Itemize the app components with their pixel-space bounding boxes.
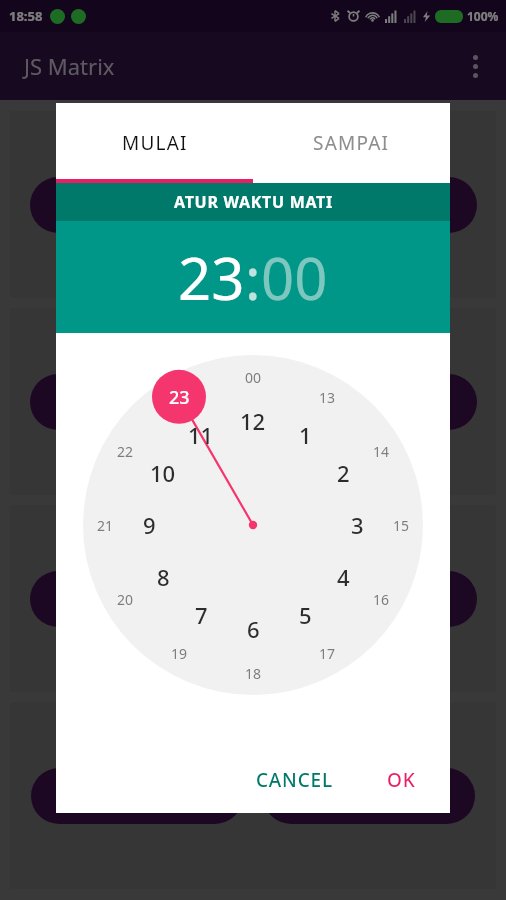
staticText: 8 [157,562,170,592]
button[interactable]: 5 [287,600,323,630]
staticText: : [245,238,261,317]
button[interactable]: Auto On/Off [10,702,496,889]
button[interactable]: More options [452,43,498,89]
staticText: 12 [240,406,266,436]
staticText: 9 [143,510,156,540]
staticText: 15 [393,516,410,535]
button[interactable]: 12 [235,406,271,436]
staticText: MULAI [122,130,188,156]
staticText: 100% [467,8,499,24]
staticText: JS Matrix [24,51,115,81]
button[interactable]: 21 [87,510,123,540]
button[interactable]: 6 [235,614,271,644]
staticText: 4 [337,562,350,592]
staticText: 18 [245,664,262,683]
staticText: 11 [188,420,214,450]
staticText: 23 [169,385,190,410]
button[interactable]: 17 [309,638,345,668]
button[interactable]: 13 [309,382,345,412]
staticText: 7 [195,600,208,630]
button[interactable]: 1 [287,420,323,450]
button[interactable]: 2 [325,458,361,488]
button[interactable]: 14 [363,436,399,466]
button[interactable]: CANCEL [242,757,347,803]
staticText: 14 [373,442,390,461]
button[interactable] [30,374,477,430]
button[interactable]: 23 [178,238,245,317]
button[interactable] [10,505,496,692]
staticText: SAMPAI [313,130,390,156]
button[interactable] [30,571,477,627]
button[interactable]: 9 [131,510,167,540]
staticText: 6 [247,614,260,644]
button[interactable]: 7 [183,600,219,630]
staticText: 3 [351,510,364,540]
staticText: Atur Waktu [338,785,428,808]
button[interactable]: 19 [161,638,197,668]
staticText: 13 [319,388,336,407]
button[interactable]: OK [373,757,430,803]
staticText: 22 [117,442,134,461]
button[interactable] [10,308,496,495]
button[interactable]: 4 [325,562,361,592]
button[interactable]: Auto On/Off [31,768,243,824]
staticText: 5 [299,600,312,630]
staticText: ATUR WAKTU MATI [174,191,333,213]
button[interactable]: 22 [107,436,143,466]
staticText: 16 [373,590,390,609]
button[interactable]: 10 [145,458,181,488]
staticText: 1 [299,420,312,450]
staticText: OK [387,767,416,793]
button[interactable]: SAMPAI [253,103,450,183]
button[interactable]: 20 [107,584,143,614]
button[interactable]: Atur Waktu [263,768,475,824]
button[interactable]: MULAI [56,103,253,183]
staticText: 19 [171,644,188,663]
button[interactable]: 11 [183,420,219,450]
staticText: 00 [245,368,262,387]
button[interactable] [30,177,477,233]
staticText: 17 [319,644,336,663]
button[interactable]: 8 [145,562,181,592]
button[interactable]: 16 [363,584,399,614]
button[interactable]: 00 [235,362,271,392]
button[interactable]: 3 [339,510,375,540]
staticText: 10 [150,458,176,488]
staticText: 18:58 [9,7,43,25]
staticText: 2 [337,458,350,488]
button[interactable] [10,111,496,298]
staticText: CANCEL [256,767,333,793]
button[interactable]: 15 [383,510,419,540]
staticText: 20 [117,590,134,609]
button[interactable]: 23 [161,382,197,412]
staticText: 21 [97,516,114,535]
button[interactable]: 18 [235,658,271,688]
button[interactable]: 00 [261,238,328,317]
